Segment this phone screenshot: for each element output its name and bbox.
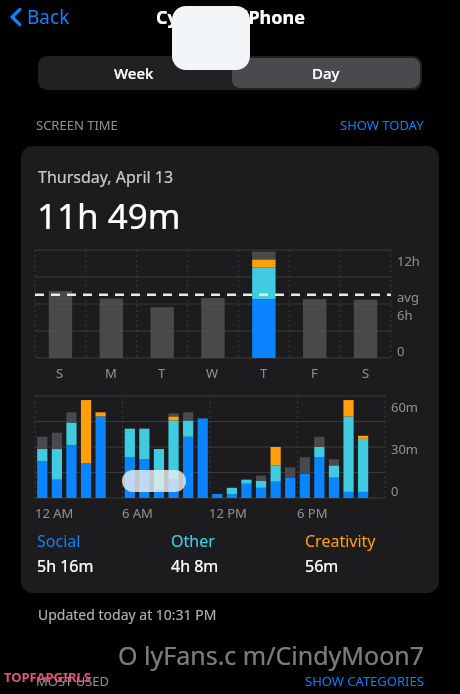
button[interactable]: Back [6, 0, 74, 34]
staticText: T [260, 364, 268, 382]
staticText: T [158, 364, 166, 382]
staticText: Social [37, 530, 81, 552]
button[interactable]: Week [38, 56, 230, 90]
staticText: S [56, 364, 64, 382]
staticText: M [105, 364, 117, 382]
staticText: SHOW CATEGORIES [305, 672, 424, 690]
staticText: Day [312, 63, 340, 83]
staticText: SHOW TODAY [340, 116, 424, 134]
staticText: 12h [397, 252, 420, 270]
staticText: Cynthia's iPhone [156, 5, 305, 30]
staticText: 6h [397, 306, 413, 324]
staticText: 6 AM [122, 504, 153, 522]
staticText: S [362, 364, 370, 382]
staticText: 30m [391, 440, 419, 458]
button[interactable]: SHOW CATEGORIES [305, 672, 424, 690]
staticText: 4h 8m [171, 555, 219, 577]
button[interactable]: Creativity [305, 530, 425, 577]
staticText: 56m [305, 555, 339, 577]
staticText: 11h 49m [37, 192, 181, 240]
staticText: 5h 16m [37, 555, 94, 577]
staticText: O lyFans.c m/CindyMoon7 [118, 638, 425, 672]
staticText: Other [171, 530, 215, 552]
button[interactable]: SHOW TODAY [340, 116, 424, 134]
staticText: 6 PM [297, 504, 328, 522]
staticText: TOPFAPGIRLS [4, 668, 91, 686]
button[interactable]: Social [37, 530, 171, 577]
button[interactable]: Day [232, 58, 420, 88]
staticText: MOST USED [36, 672, 110, 690]
staticText: 12 PM [209, 504, 247, 522]
staticText: SCREEN TIME [36, 116, 118, 134]
staticText: 60m [391, 398, 419, 416]
staticText: Back [27, 4, 70, 30]
staticText: Updated today at 10:31 PM [38, 605, 217, 624]
staticText: 0 [391, 482, 399, 500]
staticText: F [311, 364, 318, 382]
staticText: Creativity [305, 530, 376, 552]
staticText: avg [397, 288, 419, 306]
staticText: W [206, 364, 219, 382]
staticText: Week [114, 63, 154, 83]
staticText: 0 [397, 342, 405, 360]
staticText: 12 AM [35, 504, 74, 522]
staticText: Thursday, April 13 [38, 166, 174, 188]
button[interactable]: Other [171, 530, 305, 577]
